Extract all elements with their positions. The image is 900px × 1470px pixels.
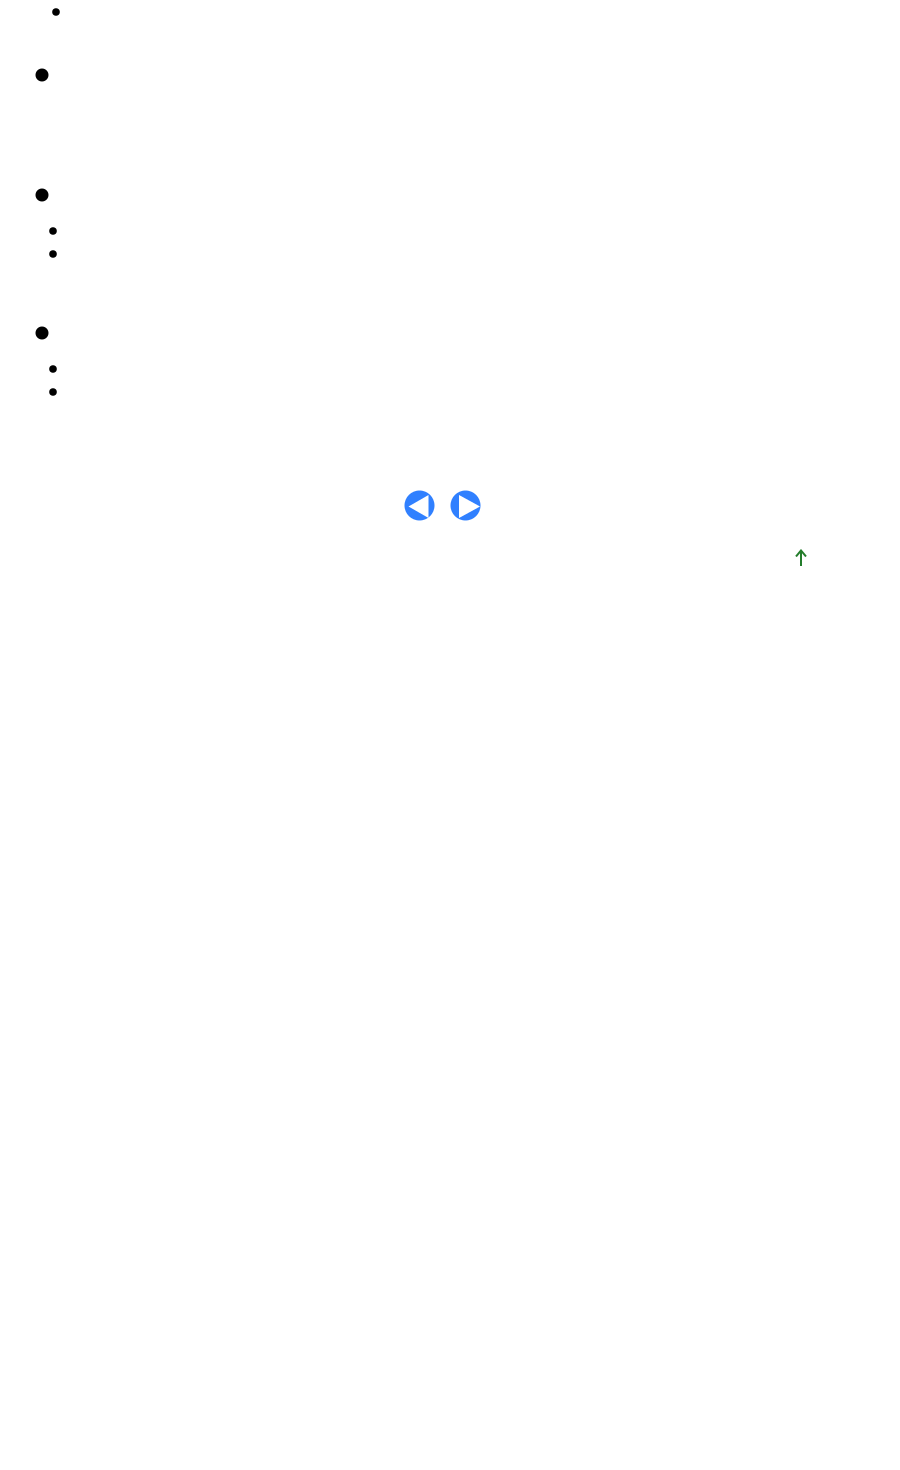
button[interactable]: Back to top [795, 549, 806, 567]
button[interactable]: Next page [450, 490, 480, 520]
button[interactable]: Previous page [404, 490, 434, 520]
